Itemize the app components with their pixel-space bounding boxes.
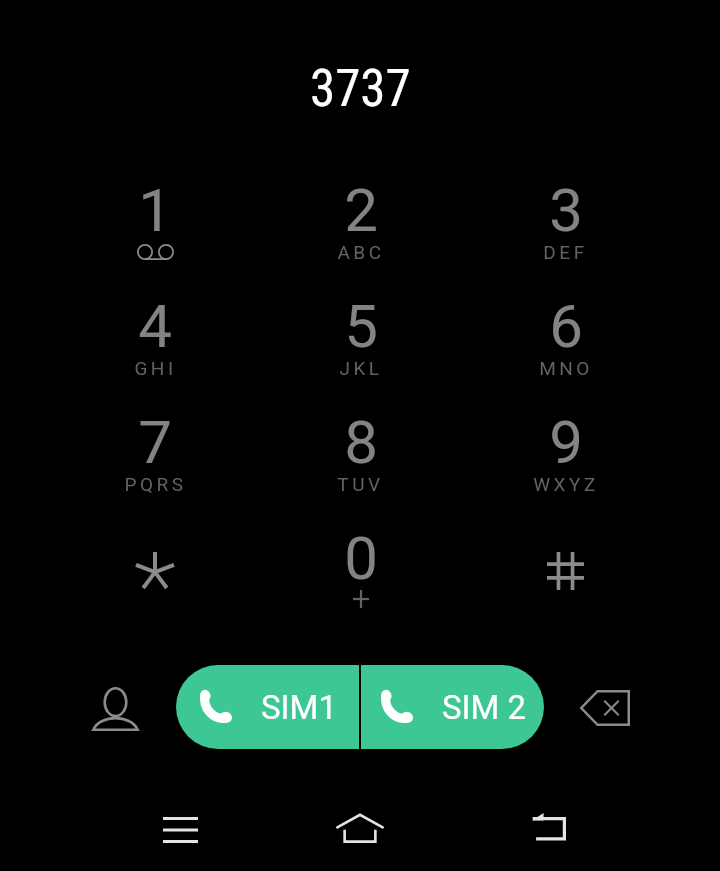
staticText: WXYZ [533, 473, 599, 495]
button[interactable]: 3 [463, 163, 668, 279]
staticText: 2 [344, 175, 378, 245]
staticText: 3 [549, 175, 583, 245]
button[interactable]: Back [508, 780, 590, 871]
button[interactable]: SIM 2 [361, 665, 544, 749]
staticText: ABC [337, 241, 385, 263]
button[interactable] [463, 511, 668, 627]
button[interactable]: 9 [463, 395, 668, 511]
staticText: TUV [337, 473, 384, 495]
button[interactable]: SIM1 [176, 665, 359, 749]
staticText: 6 [549, 291, 583, 361]
other: Home [336, 813, 384, 843]
button[interactable] [52, 511, 258, 627]
other: Backspace [580, 690, 630, 726]
button[interactable]: 1 [52, 163, 258, 279]
staticText: 4 [138, 291, 172, 361]
button[interactable]: Recents [139, 780, 221, 871]
staticText: SIM1 [261, 688, 337, 727]
staticText: 0 [344, 523, 378, 593]
staticText: 7 [138, 407, 172, 477]
staticText: SIM 2 [442, 688, 527, 727]
button[interactable]: Backspace [565, 655, 655, 759]
staticText: JKL [339, 357, 383, 379]
staticText: 3737 [310, 59, 411, 119]
button[interactable]: 0 [258, 511, 463, 627]
button[interactable]: 4 [52, 279, 258, 395]
staticText: MNO [539, 357, 593, 379]
other: Recents [163, 817, 198, 843]
button[interactable]: 5 [258, 279, 463, 395]
button[interactable]: 8 [258, 395, 463, 511]
staticText: 5 [344, 291, 378, 361]
button[interactable]: Contacts [75, 655, 155, 759]
button[interactable]: 2 [258, 163, 463, 279]
staticText: 9 [549, 407, 583, 477]
other: Back [532, 805, 566, 841]
button[interactable]: 7 [52, 395, 258, 511]
staticText: 1 [138, 175, 172, 245]
staticText: PQRS [124, 473, 187, 495]
staticText: DEF [543, 241, 588, 263]
staticText: GHI [134, 357, 177, 379]
other: Contacts [92, 687, 139, 731]
button[interactable]: 6 [463, 279, 668, 395]
button[interactable]: Home [319, 780, 401, 871]
staticText: 8 [344, 407, 378, 477]
